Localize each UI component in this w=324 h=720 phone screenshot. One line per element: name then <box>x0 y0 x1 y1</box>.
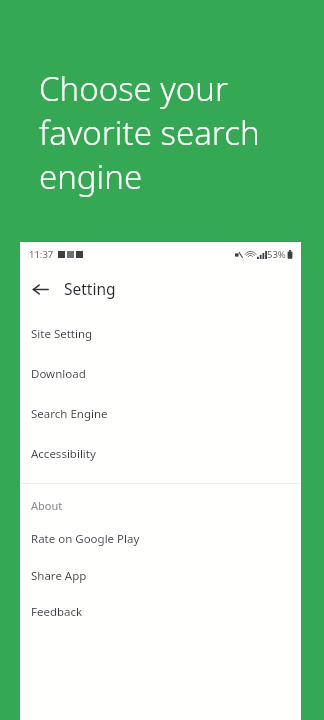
staticText: Choose your favorite search engine <box>39 66 260 199</box>
staticText: 11:37 <box>29 248 54 261</box>
button[interactable]: Site Setting <box>20 321 301 347</box>
staticText: Site Setting <box>31 326 93 342</box>
button[interactable]: Rate on Google Play <box>20 526 301 552</box>
button[interactable]: Share App <box>20 563 301 589</box>
button[interactable]: Back <box>26 275 54 303</box>
button[interactable]: Search Engine <box>20 401 301 427</box>
button[interactable]: Download <box>20 361 301 387</box>
staticText: Accessibility <box>31 446 96 462</box>
staticText: 53% <box>267 248 286 261</box>
staticText: Rate on Google Play <box>31 531 140 547</box>
button[interactable]: Accessibility <box>20 441 301 467</box>
staticText: Feedback <box>31 604 83 620</box>
staticText: Setting <box>64 278 116 299</box>
button[interactable]: Feedback <box>20 599 301 625</box>
staticText: Search Engine <box>31 406 108 422</box>
staticText: About <box>31 498 63 513</box>
staticText: Share App <box>31 568 87 584</box>
staticText: Download <box>31 366 86 382</box>
button[interactable]: About <box>20 494 301 516</box>
